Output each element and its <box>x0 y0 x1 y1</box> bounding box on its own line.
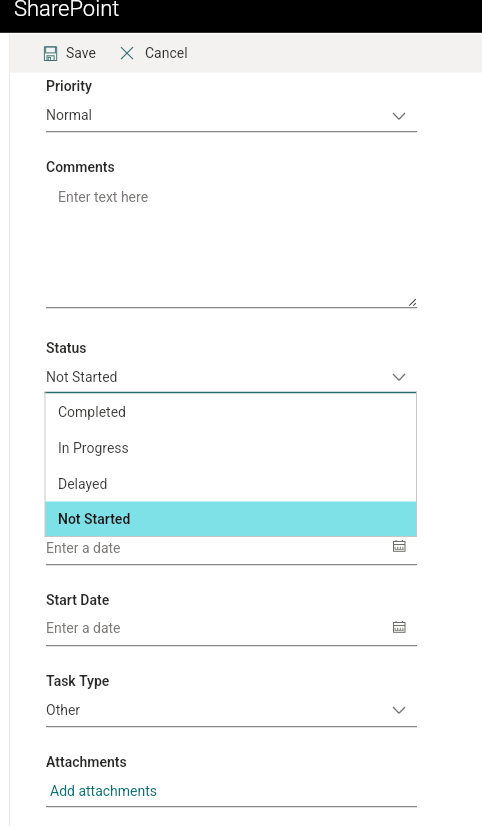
button[interactable]: Open list <box>385 104 413 132</box>
staticText: SharePoint <box>14 0 120 22</box>
staticText: Save <box>66 45 96 61</box>
button[interactable]: Not Started <box>46 362 417 392</box>
staticText: Status <box>46 340 87 356</box>
staticText: Delayed <box>58 476 108 492</box>
staticText: Completed <box>58 404 126 420</box>
button[interactable]: Not Started <box>46 501 417 537</box>
staticText: Enter a date <box>46 540 121 556</box>
button[interactable]: Pick a date <box>388 617 410 639</box>
button[interactable]: Pick a date <box>388 536 410 558</box>
button[interactable]: Open list <box>385 698 413 726</box>
staticText: Start Date <box>46 592 110 608</box>
staticText: Enter text here <box>58 189 149 205</box>
button[interactable]: Other <box>46 696 417 726</box>
button[interactable]: Completed <box>46 394 417 430</box>
staticText: Not Started <box>46 369 118 385</box>
staticText: Attachments <box>46 754 127 770</box>
button[interactable]: Enter text here <box>46 180 417 306</box>
staticText: Task Type <box>46 673 110 689</box>
staticText: Cancel <box>145 45 188 61</box>
staticText: Not Started <box>58 511 131 527</box>
staticText: Add attachments <box>50 783 158 799</box>
button[interactable]: Enter a date <box>46 534 417 564</box>
staticText: Priority <box>46 78 92 94</box>
button[interactable]: Normal <box>46 100 417 131</box>
staticText: Normal <box>46 107 93 123</box>
staticText: Other <box>46 702 81 718</box>
button[interactable]: SharePoint <box>4 0 128 28</box>
staticText: In Progress <box>58 440 129 456</box>
button[interactable]: In Progress <box>46 430 417 466</box>
button[interactable]: Open list <box>385 365 413 393</box>
button[interactable]: Enter a date <box>46 614 417 645</box>
button[interactable]: Delayed <box>46 466 417 502</box>
button[interactable]: Cancel <box>114 40 194 68</box>
button[interactable]: Add attachments <box>46 780 168 804</box>
button[interactable]: Save <box>38 40 102 68</box>
staticText: Enter a date <box>46 620 121 636</box>
staticText: Comments <box>46 159 115 175</box>
